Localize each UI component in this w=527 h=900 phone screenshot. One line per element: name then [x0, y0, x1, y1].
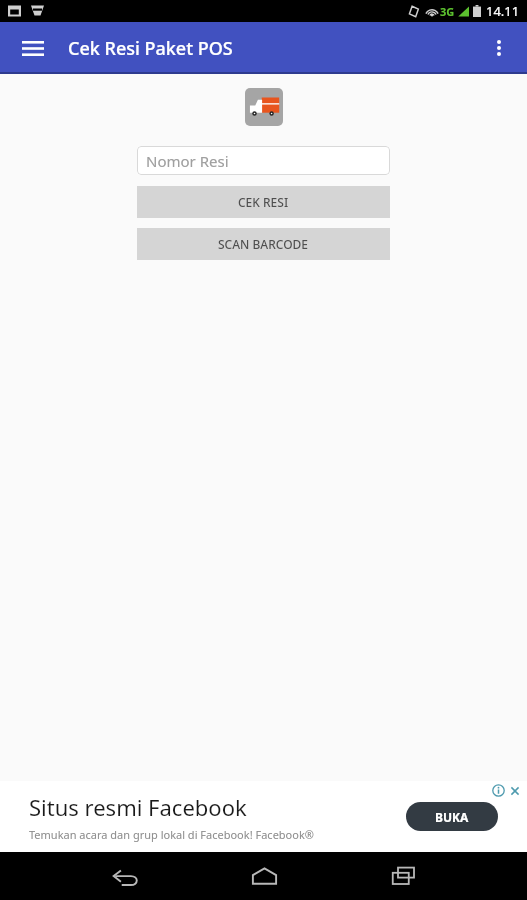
staticText: CEK RESI [238, 194, 289, 210]
staticText: SCAN BARCODE [218, 236, 309, 252]
button[interactable]: BUKA [406, 802, 498, 831]
button[interactable]: Open navigation drawer [11, 26, 55, 70]
button[interactable]: SCAN BARCODE [137, 228, 390, 260]
staticText: BUKA [435, 809, 469, 825]
staticText: Cek Resi Paket POS [68, 36, 233, 61]
staticText: 14.11 [486, 2, 520, 20]
button[interactable]: More options [477, 26, 521, 70]
button[interactable]: Home [236, 852, 292, 900]
button[interactable]: Ad info [492, 784, 505, 797]
button[interactable]: Situs resmi Facebook [0, 781, 527, 852]
button[interactable]: Nomor Resi [137, 146, 390, 175]
button[interactable]: Back [97, 852, 153, 900]
button[interactable]: Close ad [509, 785, 521, 797]
button[interactable]: Recent apps [375, 852, 431, 900]
button[interactable]: App logo [245, 88, 283, 126]
staticText: Nomor Resi [146, 151, 229, 171]
staticText: Temukan acara dan grup lokal di Facebook… [29, 827, 314, 842]
staticText: Situs resmi Facebook [29, 792, 247, 822]
staticText: 3G [440, 4, 455, 19]
button[interactable]: CEK RESI [137, 186, 390, 218]
